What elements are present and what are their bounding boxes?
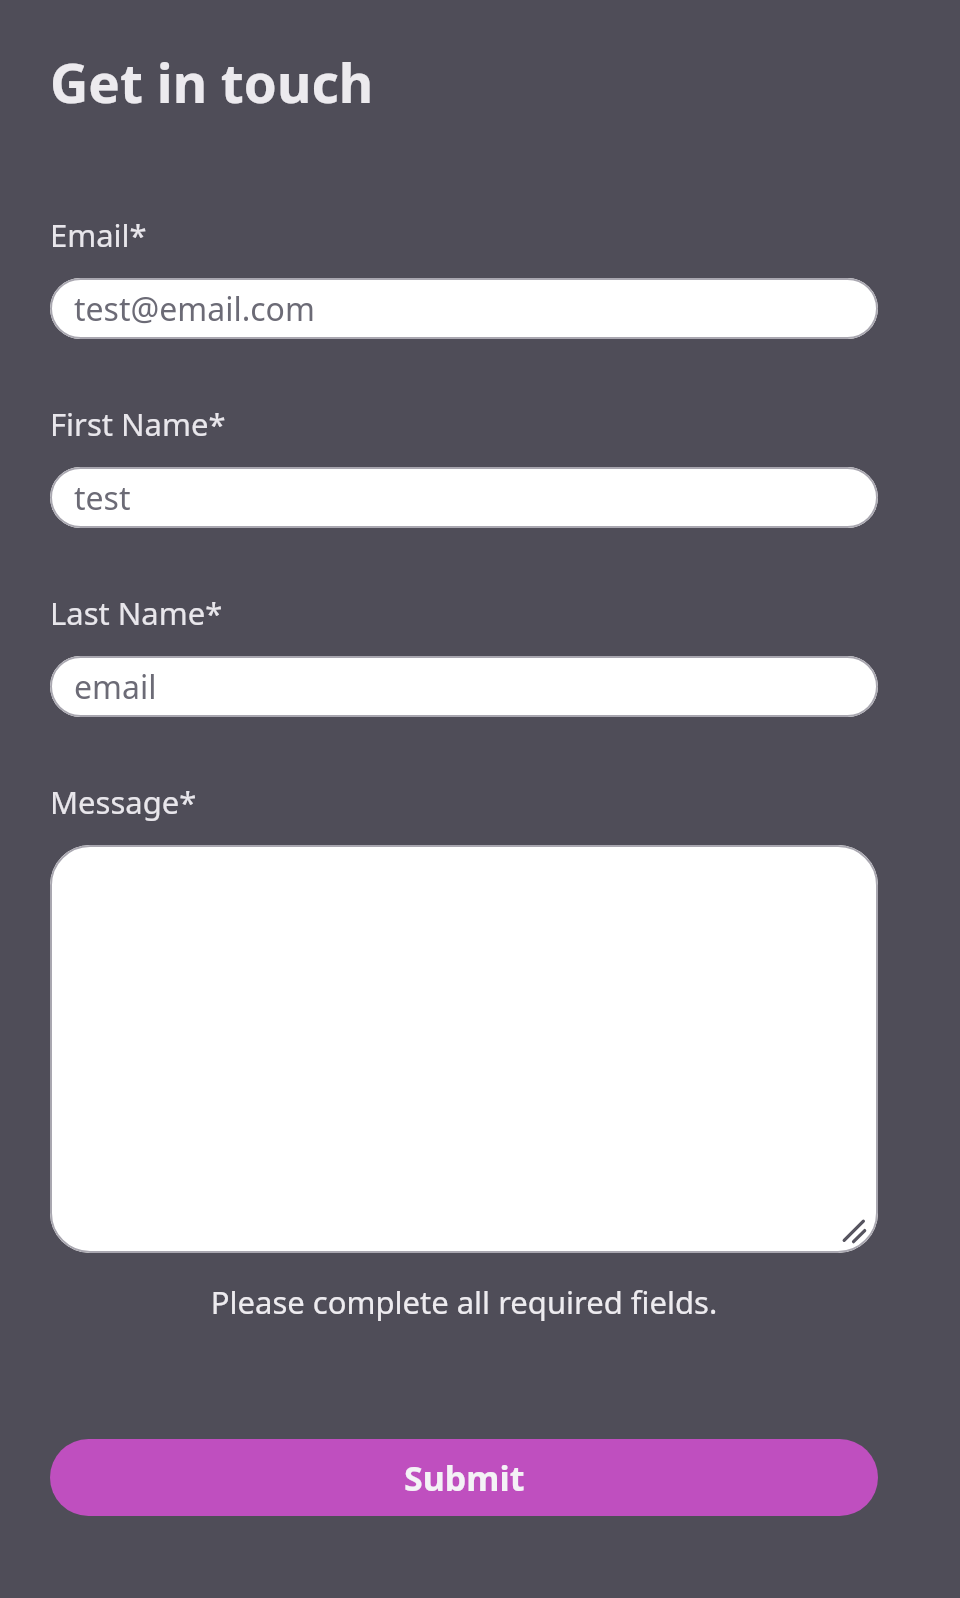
staticText: Message* (50, 781, 197, 823)
staticText: Get in touch (50, 46, 374, 118)
staticText: test (74, 476, 131, 520)
button[interactable]: test@email.com (50, 278, 878, 339)
staticText: email (74, 665, 157, 709)
button[interactable]: Submit (50, 1439, 878, 1516)
button[interactable]: email (50, 656, 878, 717)
staticText: Email* (50, 214, 147, 256)
button[interactable]: Message input (50, 845, 878, 1253)
button[interactable]: test (50, 467, 878, 528)
staticText: Please complete all required fields. (50, 1281, 878, 1323)
staticText: First Name* (50, 403, 226, 445)
staticText: test@email.com (74, 287, 315, 331)
staticText: Submit (404, 1455, 525, 1501)
staticText: Last Name* (50, 592, 223, 634)
